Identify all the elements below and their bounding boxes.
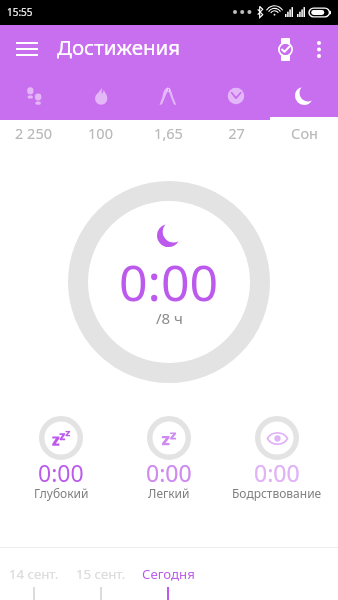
button[interactable]: 0:00	[115, 416, 223, 507]
staticText: 0:00	[146, 457, 192, 488]
staticText: /8 ч	[156, 308, 183, 328]
button[interactable]: Distance	[134, 73, 202, 120]
button[interactable]: 14 сент.	[0, 547, 67, 600]
button[interactable]: 0:00	[223, 416, 331, 507]
staticText: 14 сент.	[9, 565, 59, 583]
button[interactable]: Steps	[0, 73, 67, 120]
staticText: 0:00	[119, 248, 219, 316]
button[interactable]: Sleep	[270, 73, 338, 120]
staticText: 15 сент.	[76, 565, 126, 583]
staticText: 0:00	[254, 457, 300, 488]
staticText: Легкий	[148, 485, 190, 501]
button[interactable]: 15 сент.	[67, 547, 134, 600]
button[interactable]: Calories	[67, 73, 134, 120]
button[interactable]: Watch connected	[263, 25, 307, 73]
staticText: Сегодня	[142, 565, 195, 583]
staticText: 27	[228, 123, 245, 143]
button[interactable]: Active minutes	[202, 73, 270, 120]
button[interactable]: Сегодня	[134, 547, 202, 600]
staticText: Глубокий	[34, 485, 89, 501]
staticText: Достижения	[57, 33, 181, 73]
staticText: 100	[88, 123, 113, 143]
staticText: 15:55	[7, 5, 33, 19]
button[interactable]: Navigation menu	[3, 25, 51, 73]
staticText: Сон	[291, 123, 318, 143]
staticText: 2 250	[15, 123, 52, 143]
button[interactable]: 0:00	[7, 416, 115, 507]
staticText: 0:00	[38, 457, 84, 488]
staticText: 1,65	[154, 123, 183, 143]
button[interactable]: More options	[300, 25, 338, 73]
staticText: Бодрствование	[232, 485, 322, 501]
